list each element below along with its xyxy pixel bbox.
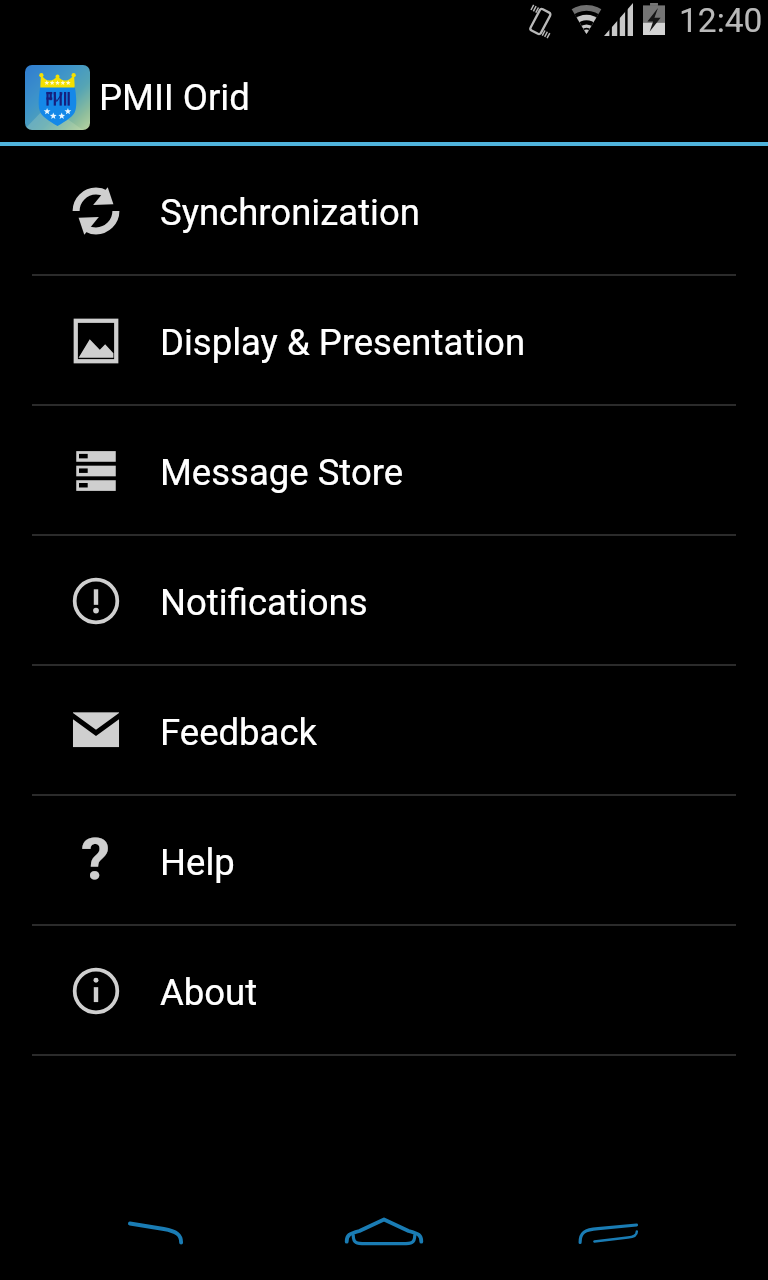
staticText: Help	[160, 841, 235, 884]
button[interactable]: ?	[0, 796, 768, 926]
staticText: Notifications	[160, 581, 368, 624]
staticText: About	[160, 971, 258, 1014]
button[interactable]: Back	[32, 1145, 256, 1280]
button[interactable]: About	[0, 926, 768, 1056]
staticText: Display & Presentation	[160, 321, 526, 364]
button[interactable]: Synchronization	[0, 146, 768, 276]
button[interactable]: Home	[256, 1145, 512, 1280]
staticText: ?	[81, 825, 110, 893]
button[interactable]: Notifications	[0, 536, 768, 666]
button[interactable]: Display & Presentation	[0, 276, 768, 406]
staticText: Synchronization	[160, 191, 420, 234]
staticText: PMII Orid	[99, 76, 250, 119]
button[interactable]: Message Store	[0, 406, 768, 536]
staticText: Feedback	[160, 711, 318, 754]
staticText: 12:40	[679, 1, 763, 40]
staticText: Message Store	[160, 451, 404, 494]
button[interactable]: Feedback	[0, 666, 768, 796]
button[interactable]: Recent apps	[512, 1145, 736, 1280]
